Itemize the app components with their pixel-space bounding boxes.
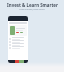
staticText: Invest & Learn Smarter: [7, 2, 58, 8]
staticText: Track markets, build habits: [19, 8, 45, 11]
